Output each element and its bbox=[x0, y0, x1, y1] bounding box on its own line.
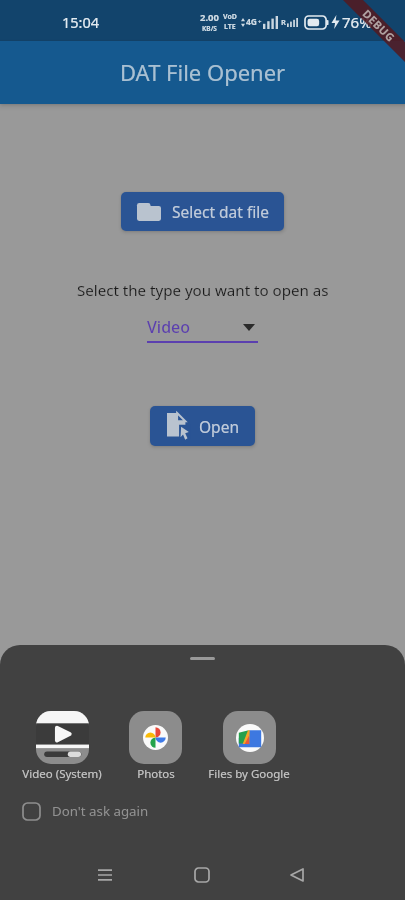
button[interactable]: Recents bbox=[81, 851, 129, 899]
button[interactable]: Video bbox=[147, 316, 258, 343]
staticText: Files by Google bbox=[208, 766, 290, 782]
button[interactable]: Home bbox=[178, 851, 226, 899]
button[interactable]: Don't ask again bbox=[23, 802, 405, 820]
button[interactable]: Files by Google bbox=[208, 711, 290, 782]
staticText: 2.00 bbox=[200, 11, 219, 24]
button[interactable]: Select dat file bbox=[121, 192, 284, 231]
button[interactable]: Video (System) bbox=[22, 711, 102, 782]
staticText: Don't ask again bbox=[52, 802, 149, 820]
staticText: 4G bbox=[246, 16, 258, 28]
staticText: DAT File Opener bbox=[120, 57, 286, 87]
staticText: 15:04 bbox=[62, 12, 100, 32]
button[interactable]: Open bbox=[150, 406, 255, 446]
staticText: R bbox=[281, 17, 286, 27]
staticText: Select the type you want to open as bbox=[77, 280, 329, 301]
staticText: Video bbox=[147, 316, 191, 338]
staticText: DEBUG bbox=[360, 6, 398, 45]
button[interactable]: Back bbox=[273, 851, 321, 899]
staticText: LTE bbox=[224, 22, 236, 32]
button[interactable]: Photos bbox=[129, 711, 182, 782]
staticText: Open bbox=[199, 416, 239, 437]
staticText: VoD bbox=[223, 12, 237, 22]
staticText: + bbox=[258, 18, 262, 26]
staticText: Video (System) bbox=[22, 766, 102, 782]
staticText: Select dat file bbox=[172, 201, 269, 222]
staticText: 76% bbox=[342, 12, 372, 32]
staticText: Photos bbox=[137, 766, 175, 782]
staticText: KB/S bbox=[202, 24, 217, 33]
